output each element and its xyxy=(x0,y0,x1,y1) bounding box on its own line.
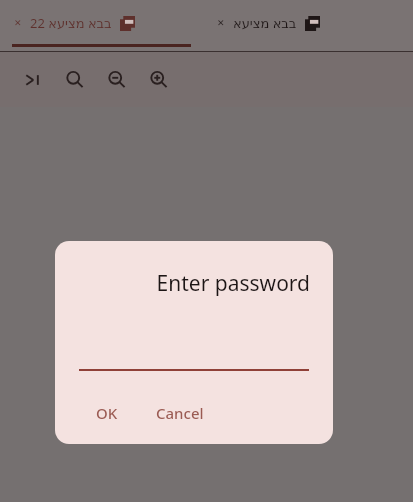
button[interactable]: ✕ xyxy=(203,0,403,52)
button[interactable]: Search xyxy=(62,67,88,93)
button[interactable]: OK xyxy=(90,397,124,429)
staticText: Cancel xyxy=(156,403,204,423)
button[interactable]: Jump to end xyxy=(20,67,46,93)
staticText: OK xyxy=(96,403,118,423)
button[interactable]: ✕ xyxy=(0,0,203,52)
staticText: ✕ xyxy=(14,18,22,28)
staticText: Enter password xyxy=(55,269,310,298)
staticText: ✕ xyxy=(217,18,225,28)
button[interactable]: Zoom in xyxy=(146,67,172,93)
staticText: בבא מציעא 22 xyxy=(30,14,112,32)
button[interactable] xyxy=(79,345,309,371)
button[interactable]: Zoom out xyxy=(104,67,130,93)
button[interactable]: Cancel xyxy=(150,397,210,429)
staticText: בבא מציעא xyxy=(233,14,297,32)
